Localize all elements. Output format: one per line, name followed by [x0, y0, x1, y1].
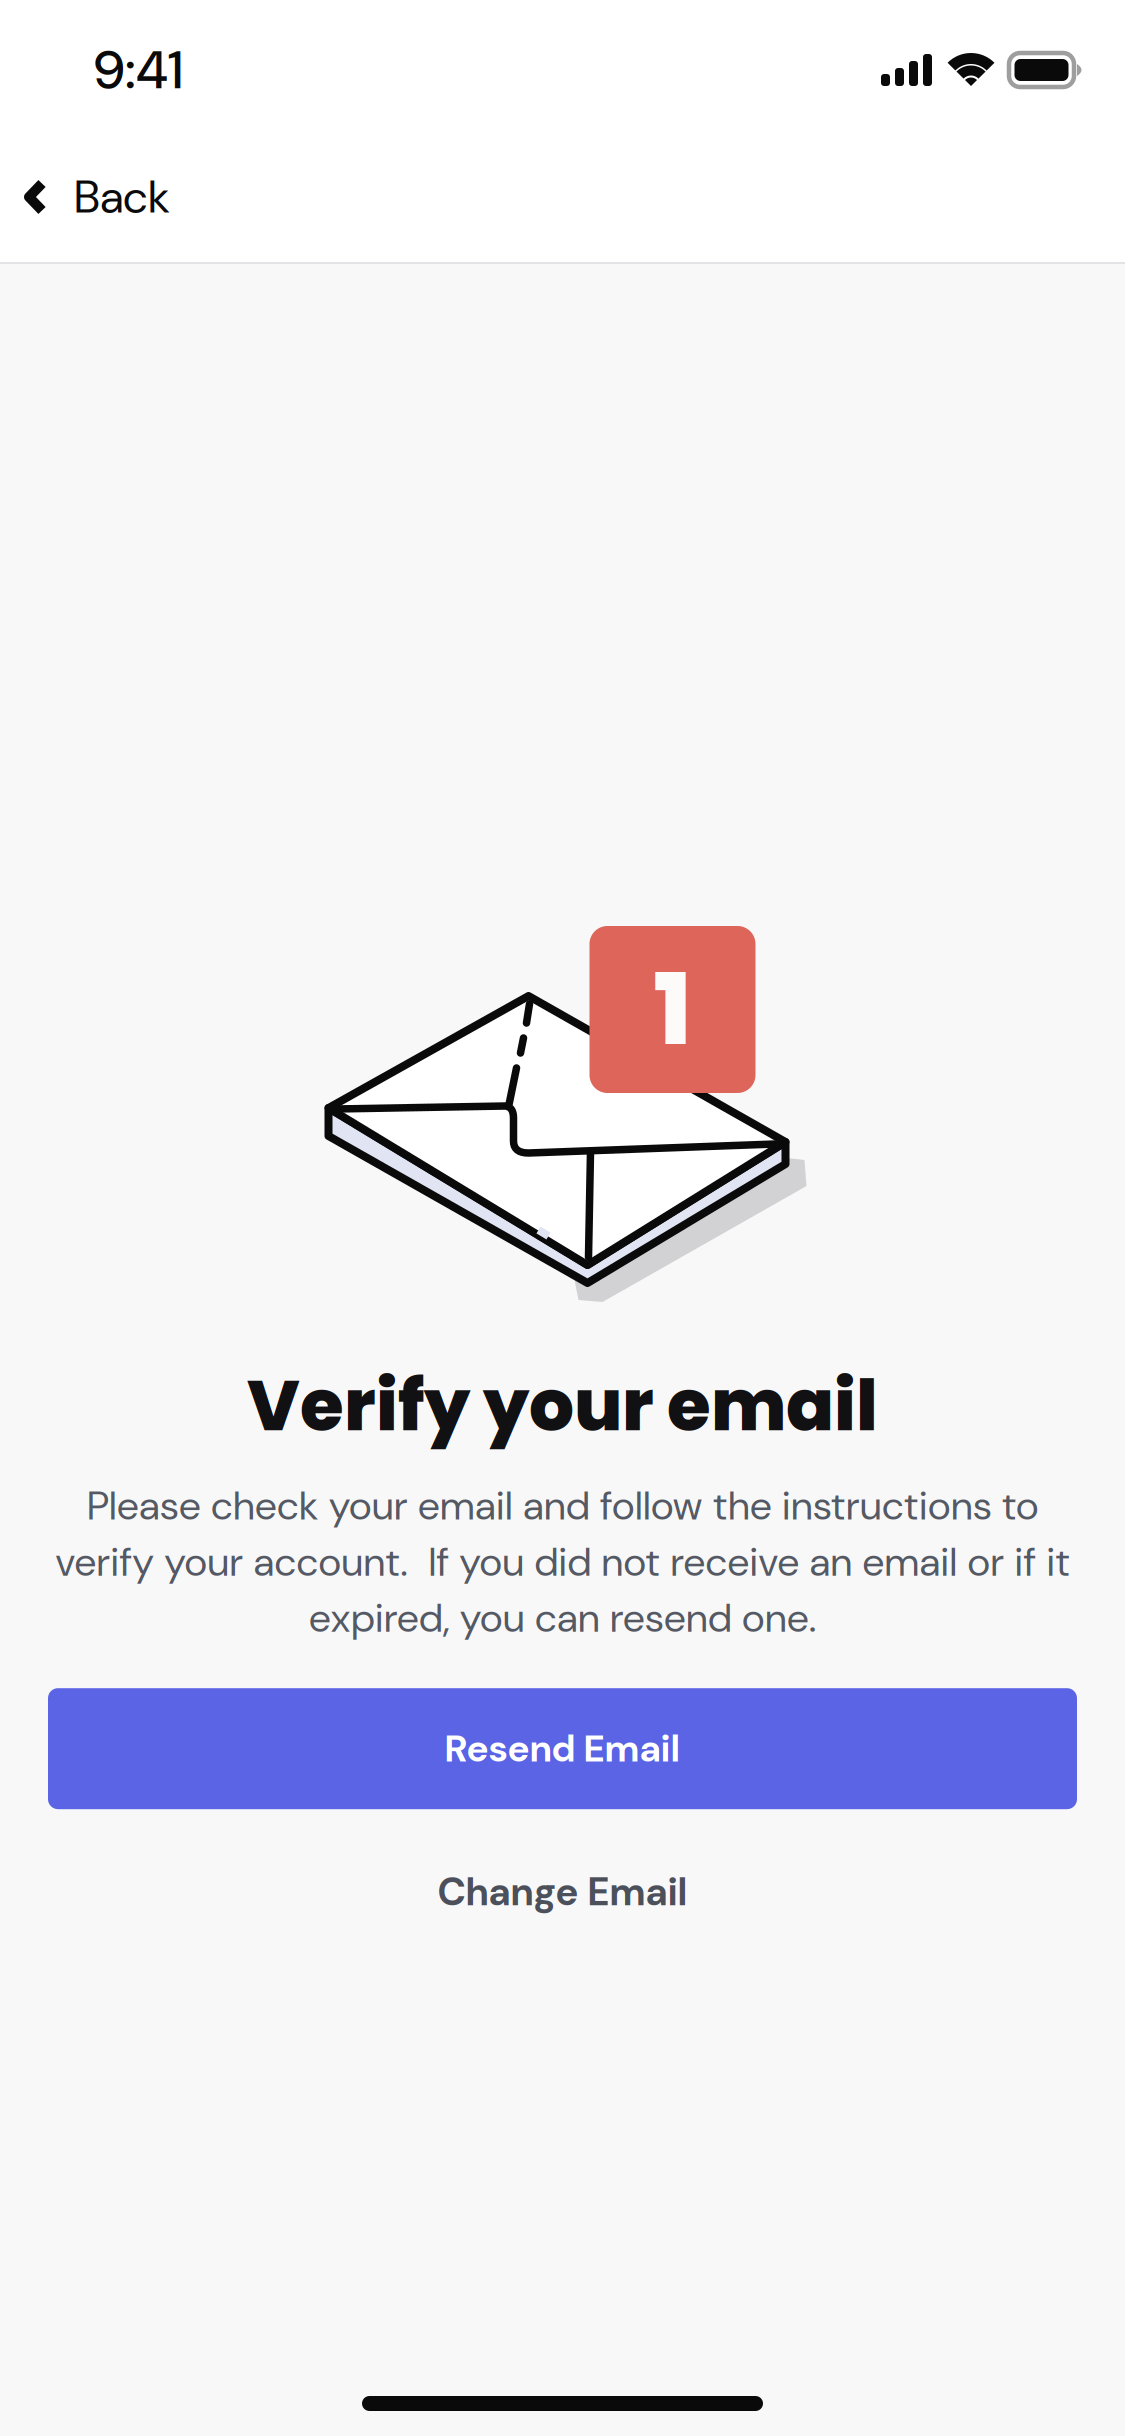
- staticText: Back: [74, 167, 170, 226]
- staticText: Change Email: [437, 1867, 687, 1917]
- staticText: Please check your email and follow the i…: [55, 1480, 1070, 1644]
- staticText: Verify your email: [247, 1356, 878, 1455]
- staticText: 1: [653, 940, 691, 1078]
- button[interactable]: Change Email: [48, 1837, 1077, 1947]
- button[interactable]: Back: [0, 132, 196, 262]
- button[interactable]: Resend Email: [48, 1688, 1077, 1809]
- staticText: Resend Email: [444, 1724, 680, 1773]
- staticText: 9:41: [94, 35, 183, 105]
